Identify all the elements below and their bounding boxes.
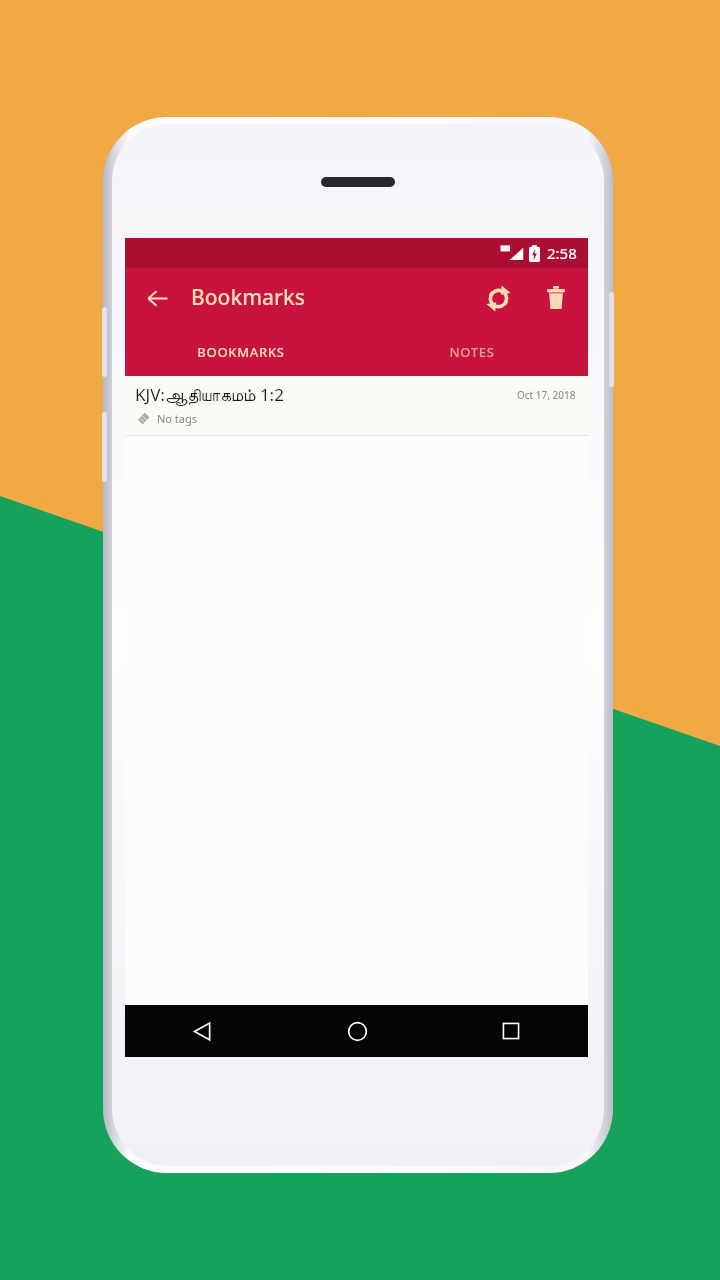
staticText: 2:58 bbox=[547, 243, 577, 263]
staticText: Bookmarks bbox=[191, 283, 305, 312]
staticText: KJV:ஆதியாகமம் 1:2 bbox=[135, 383, 284, 406]
button[interactable]: KJV:ஆதியாகமம் 1:2 bbox=[125, 376, 588, 435]
staticText: NOTES bbox=[449, 343, 495, 361]
button[interactable]: Sync bbox=[476, 276, 520, 320]
button[interactable]: Home bbox=[280, 1005, 434, 1057]
staticText: No tags bbox=[157, 411, 198, 426]
button[interactable]: Delete bbox=[534, 276, 578, 320]
button[interactable]: BOOKMARKS bbox=[125, 327, 356, 376]
button[interactable]: Back bbox=[125, 1005, 280, 1057]
button[interactable]: Back bbox=[135, 276, 179, 320]
staticText: Oct 17, 2018 bbox=[517, 388, 576, 402]
staticText: BOOKMARKS bbox=[197, 343, 285, 361]
button[interactable]: Recents bbox=[434, 1005, 588, 1057]
button[interactable]: NOTES bbox=[356, 327, 588, 376]
